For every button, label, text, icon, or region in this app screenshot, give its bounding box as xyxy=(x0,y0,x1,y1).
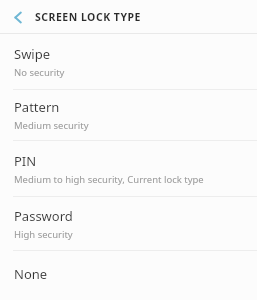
staticText: Swipe xyxy=(14,45,51,63)
staticText: No security xyxy=(14,66,65,79)
staticText: High security xyxy=(14,228,73,241)
button[interactable]: Swipe xyxy=(0,34,257,89)
button[interactable]: PIN xyxy=(0,141,257,196)
staticText: SCREEN LOCK TYPE xyxy=(35,10,141,24)
staticText: Pattern xyxy=(14,98,60,116)
staticText: PIN xyxy=(14,152,37,170)
staticText: None xyxy=(14,265,48,283)
staticText: Password xyxy=(14,207,73,225)
staticText: Medium security xyxy=(14,119,89,132)
button[interactable]: Back xyxy=(7,6,29,28)
button[interactable]: Pattern xyxy=(0,90,257,140)
button[interactable]: None xyxy=(0,251,257,296)
button[interactable]: Password xyxy=(0,197,257,250)
staticText: Medium to high security, Current lock ty… xyxy=(14,173,204,186)
